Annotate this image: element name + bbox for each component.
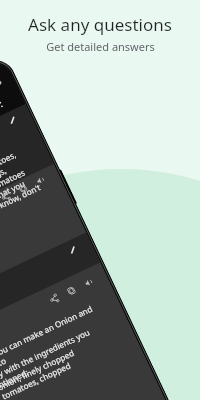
button[interactable]: Share (46, 290, 63, 308)
staticText: What can I make? (0, 297, 3, 336)
staticText: Ask any questions (28, 13, 172, 36)
button[interactable]: Edit (65, 242, 81, 258)
button[interactable]: Copy (63, 282, 80, 299)
button[interactable]: Read aloud (32, 172, 49, 189)
staticText: I have potatoes, eggs, tomatoes that you… (0, 133, 49, 210)
button[interactable]: Share (0, 188, 15, 205)
button[interactable]: More options (0, 94, 9, 111)
staticText: Get detailed answers (46, 39, 155, 54)
button[interactable]: Copy (14, 180, 32, 197)
button[interactable]: Edit (4, 112, 20, 128)
staticText: 1 onion, finely chopped 2 tomatoes, chop… (0, 330, 116, 400)
staticText: Sure, you can make an Onion and Tomato C… (0, 301, 111, 395)
button[interactable]: Read aloud (80, 274, 97, 291)
